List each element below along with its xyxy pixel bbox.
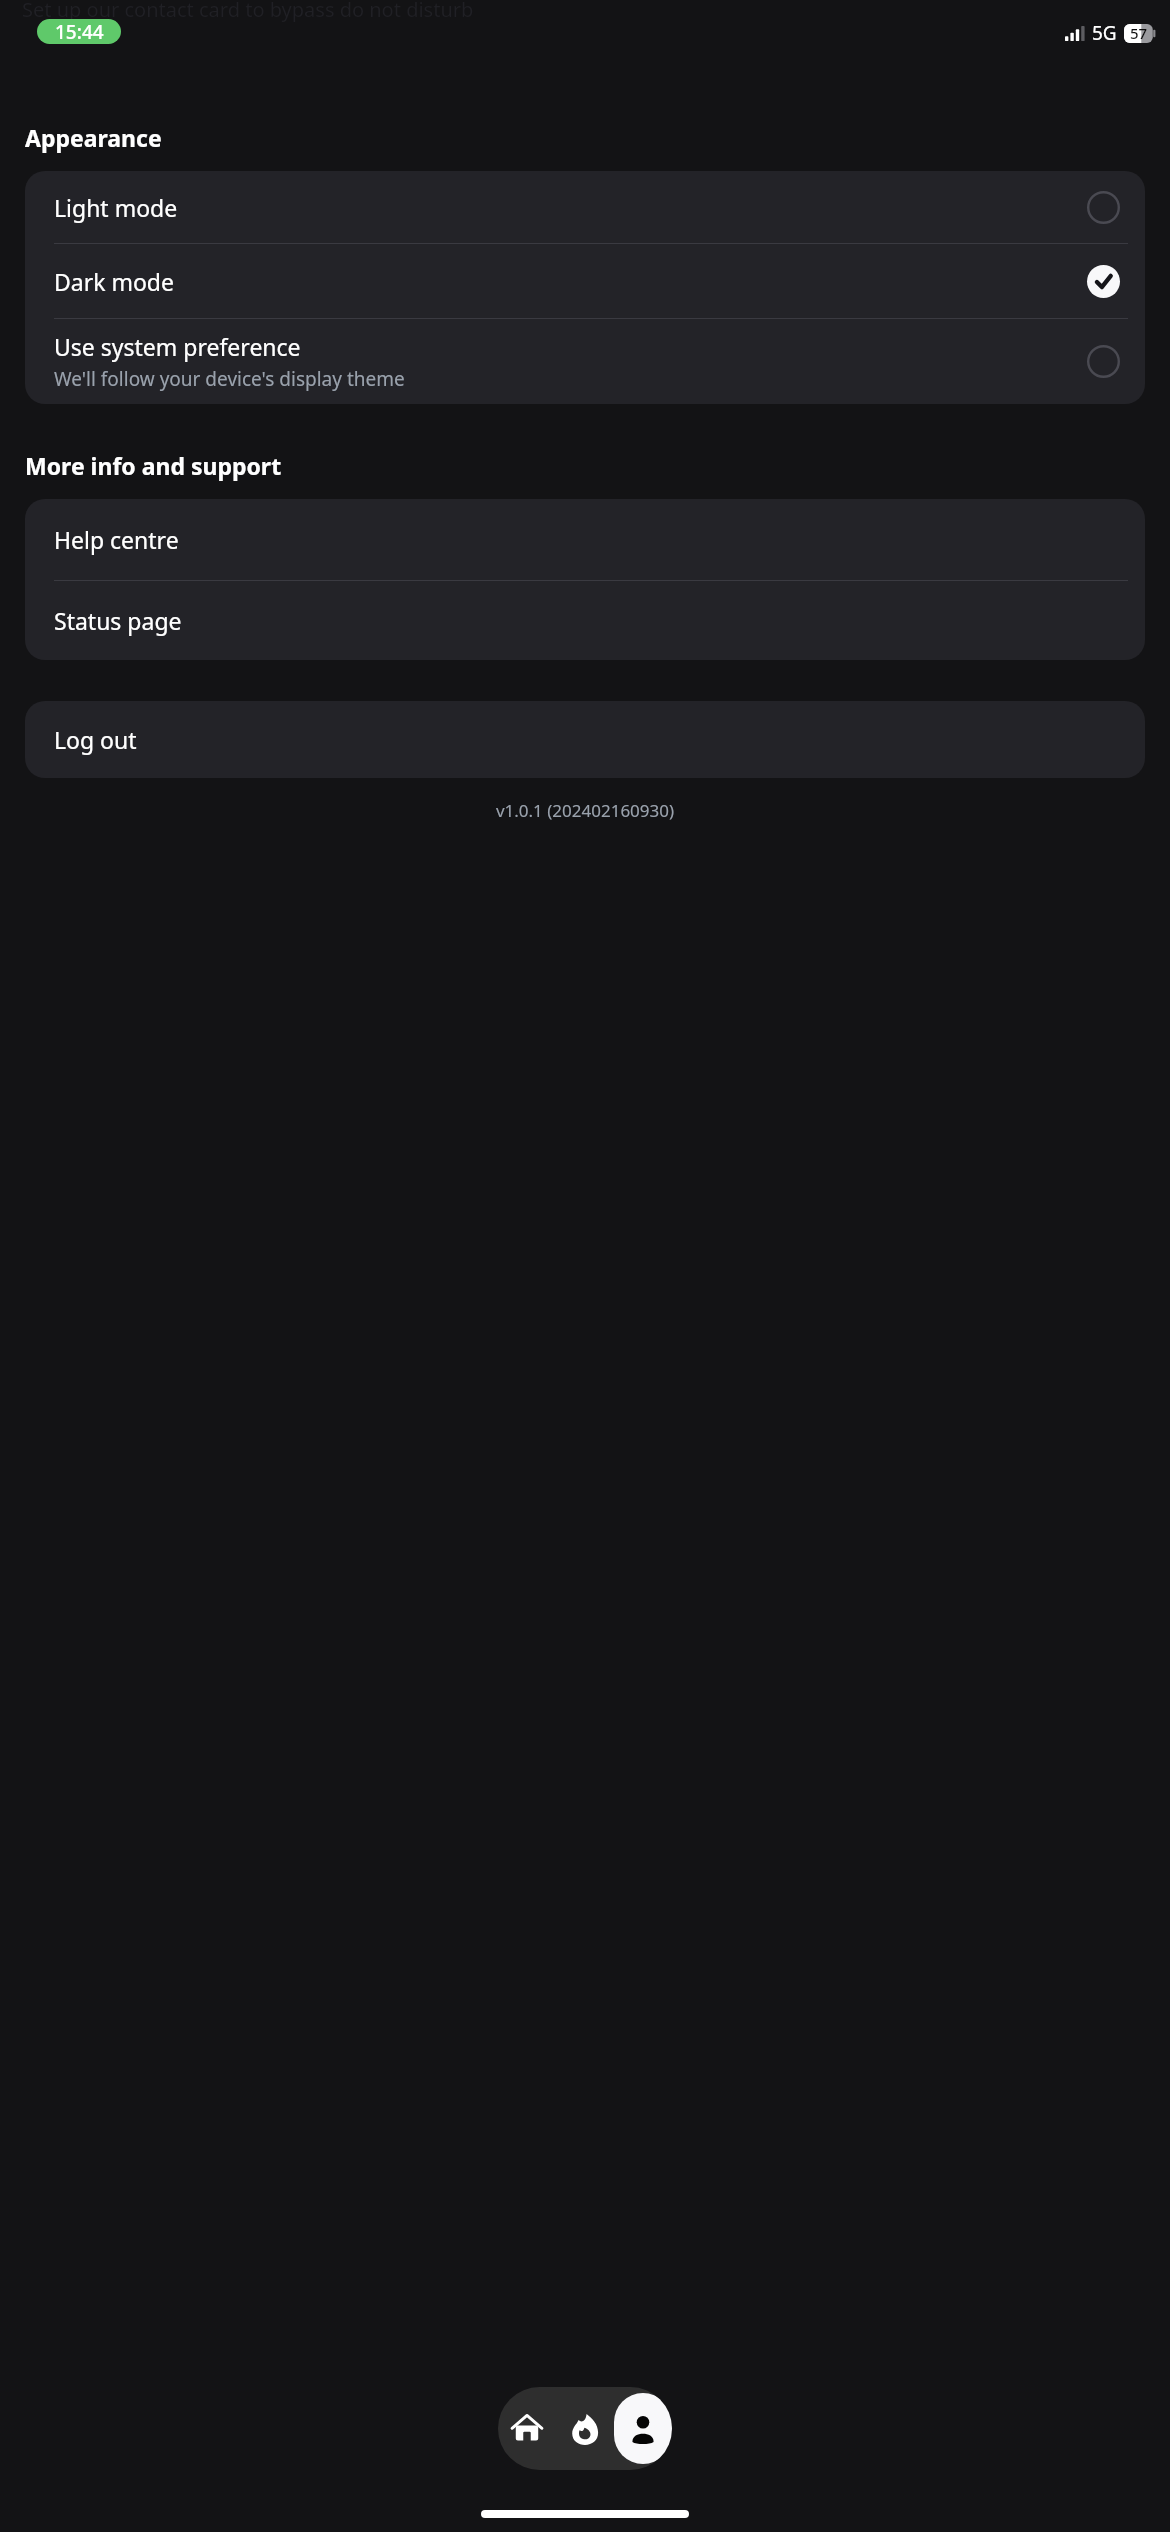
button[interactable]: Light mode [25, 171, 1145, 243]
staticText: We'll follow your device's display theme [54, 366, 405, 392]
staticText: v1.0.1 (202402160930) [0, 799, 1170, 822]
button[interactable]: Log out [25, 701, 1145, 778]
staticText: Dark mode [54, 266, 174, 297]
staticText: Log out [54, 724, 137, 755]
button[interactable]: Dark mode [25, 244, 1145, 318]
button[interactable]: Home [498, 2387, 556, 2470]
staticText: Help centre [54, 524, 179, 555]
staticText: Appearance [25, 122, 162, 153]
button[interactable]: Trending [556, 2387, 614, 2470]
button[interactable]: Use system preference [25, 319, 1145, 404]
button[interactable]: Help centre [25, 499, 1145, 580]
button[interactable]: Profile [614, 2387, 672, 2470]
staticText: Set up our contact card to bypass do not… [22, 0, 1170, 23]
staticText: More info and support [25, 450, 282, 481]
staticText: 5G [1092, 20, 1117, 46]
staticText: Light mode [54, 192, 178, 223]
staticText: Status page [54, 605, 182, 636]
staticText: Use system preference [54, 331, 301, 362]
staticText: 15:44 [55, 19, 104, 44]
button[interactable]: Status page [25, 581, 1145, 660]
staticText: 57 [1130, 23, 1148, 43]
